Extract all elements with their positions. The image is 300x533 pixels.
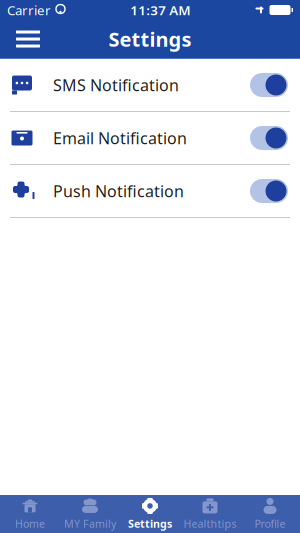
staticText: Carrier (7, 1, 51, 19)
button[interactable]: Email Notification (0, 112, 300, 164)
staticText: Email Notification (53, 127, 187, 149)
staticText: Push Notification (53, 180, 184, 202)
button[interactable]: Healthtips (180, 495, 240, 533)
button[interactable]: Profile (240, 495, 300, 533)
staticText: Settings (108, 26, 191, 52)
staticText: SMS Notification (53, 74, 179, 96)
button[interactable]: Settings (120, 495, 180, 533)
button[interactable]: Push Notification (0, 165, 300, 217)
staticText: MY Family (64, 516, 116, 531)
staticText: Healthtips (183, 516, 236, 531)
staticText: Profile (254, 516, 285, 531)
staticText: Settings (128, 516, 172, 531)
staticText: Home (15, 516, 45, 531)
button[interactable]: Home (0, 495, 60, 533)
staticText: 11:37 AM (130, 1, 190, 19)
button[interactable]: MY Family (60, 495, 120, 533)
button[interactable]: Menu (6, 20, 50, 58)
button[interactable]: SMS Notification (0, 59, 300, 111)
